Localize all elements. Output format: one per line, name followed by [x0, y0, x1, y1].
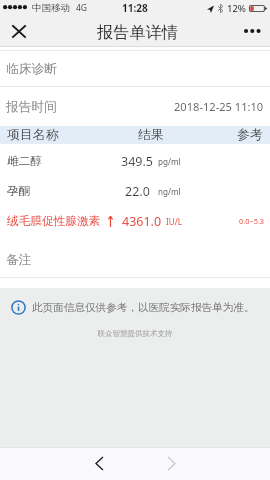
button[interactable]: Back	[86, 450, 113, 477]
staticText: 4361.0	[122, 213, 162, 230]
staticText: IU/L	[166, 216, 182, 227]
button[interactable]: Close	[6, 18, 32, 44]
staticText: 备注	[6, 252, 32, 268]
staticText: 报告时间	[6, 99, 57, 115]
staticText: 12%	[227, 2, 246, 15]
staticText: 349.5	[121, 153, 153, 170]
staticText: 参考	[237, 127, 263, 143]
staticText: 2018-12-25 11:10	[174, 99, 264, 114]
staticText: 0.0~5.3	[239, 216, 265, 226]
staticText: 项目名称	[7, 127, 59, 143]
staticText: 22.0	[125, 183, 150, 200]
staticText: 雌二醇	[7, 154, 43, 169]
staticText: ng/ml	[158, 186, 181, 197]
staticText: 结果	[138, 127, 164, 143]
staticText: 孕酮	[7, 184, 31, 199]
staticText: 中国移动	[32, 2, 70, 14]
staticText: 联众智慧提供技术支持	[0, 329, 270, 338]
staticText: 此页面信息仅供参考，以医院实际报告单为准。	[32, 301, 255, 314]
button[interactable]: Forward	[158, 450, 185, 477]
staticText: 报告单详情	[97, 22, 178, 42]
staticText: pg/ml	[158, 156, 181, 167]
button[interactable]: More options	[239, 18, 265, 44]
staticText: 临床诊断	[6, 61, 57, 77]
staticText: 4G	[76, 2, 88, 14]
staticText: 绒毛膜促性腺激素	[7, 214, 101, 229]
staticText: 11:28	[122, 1, 148, 15]
